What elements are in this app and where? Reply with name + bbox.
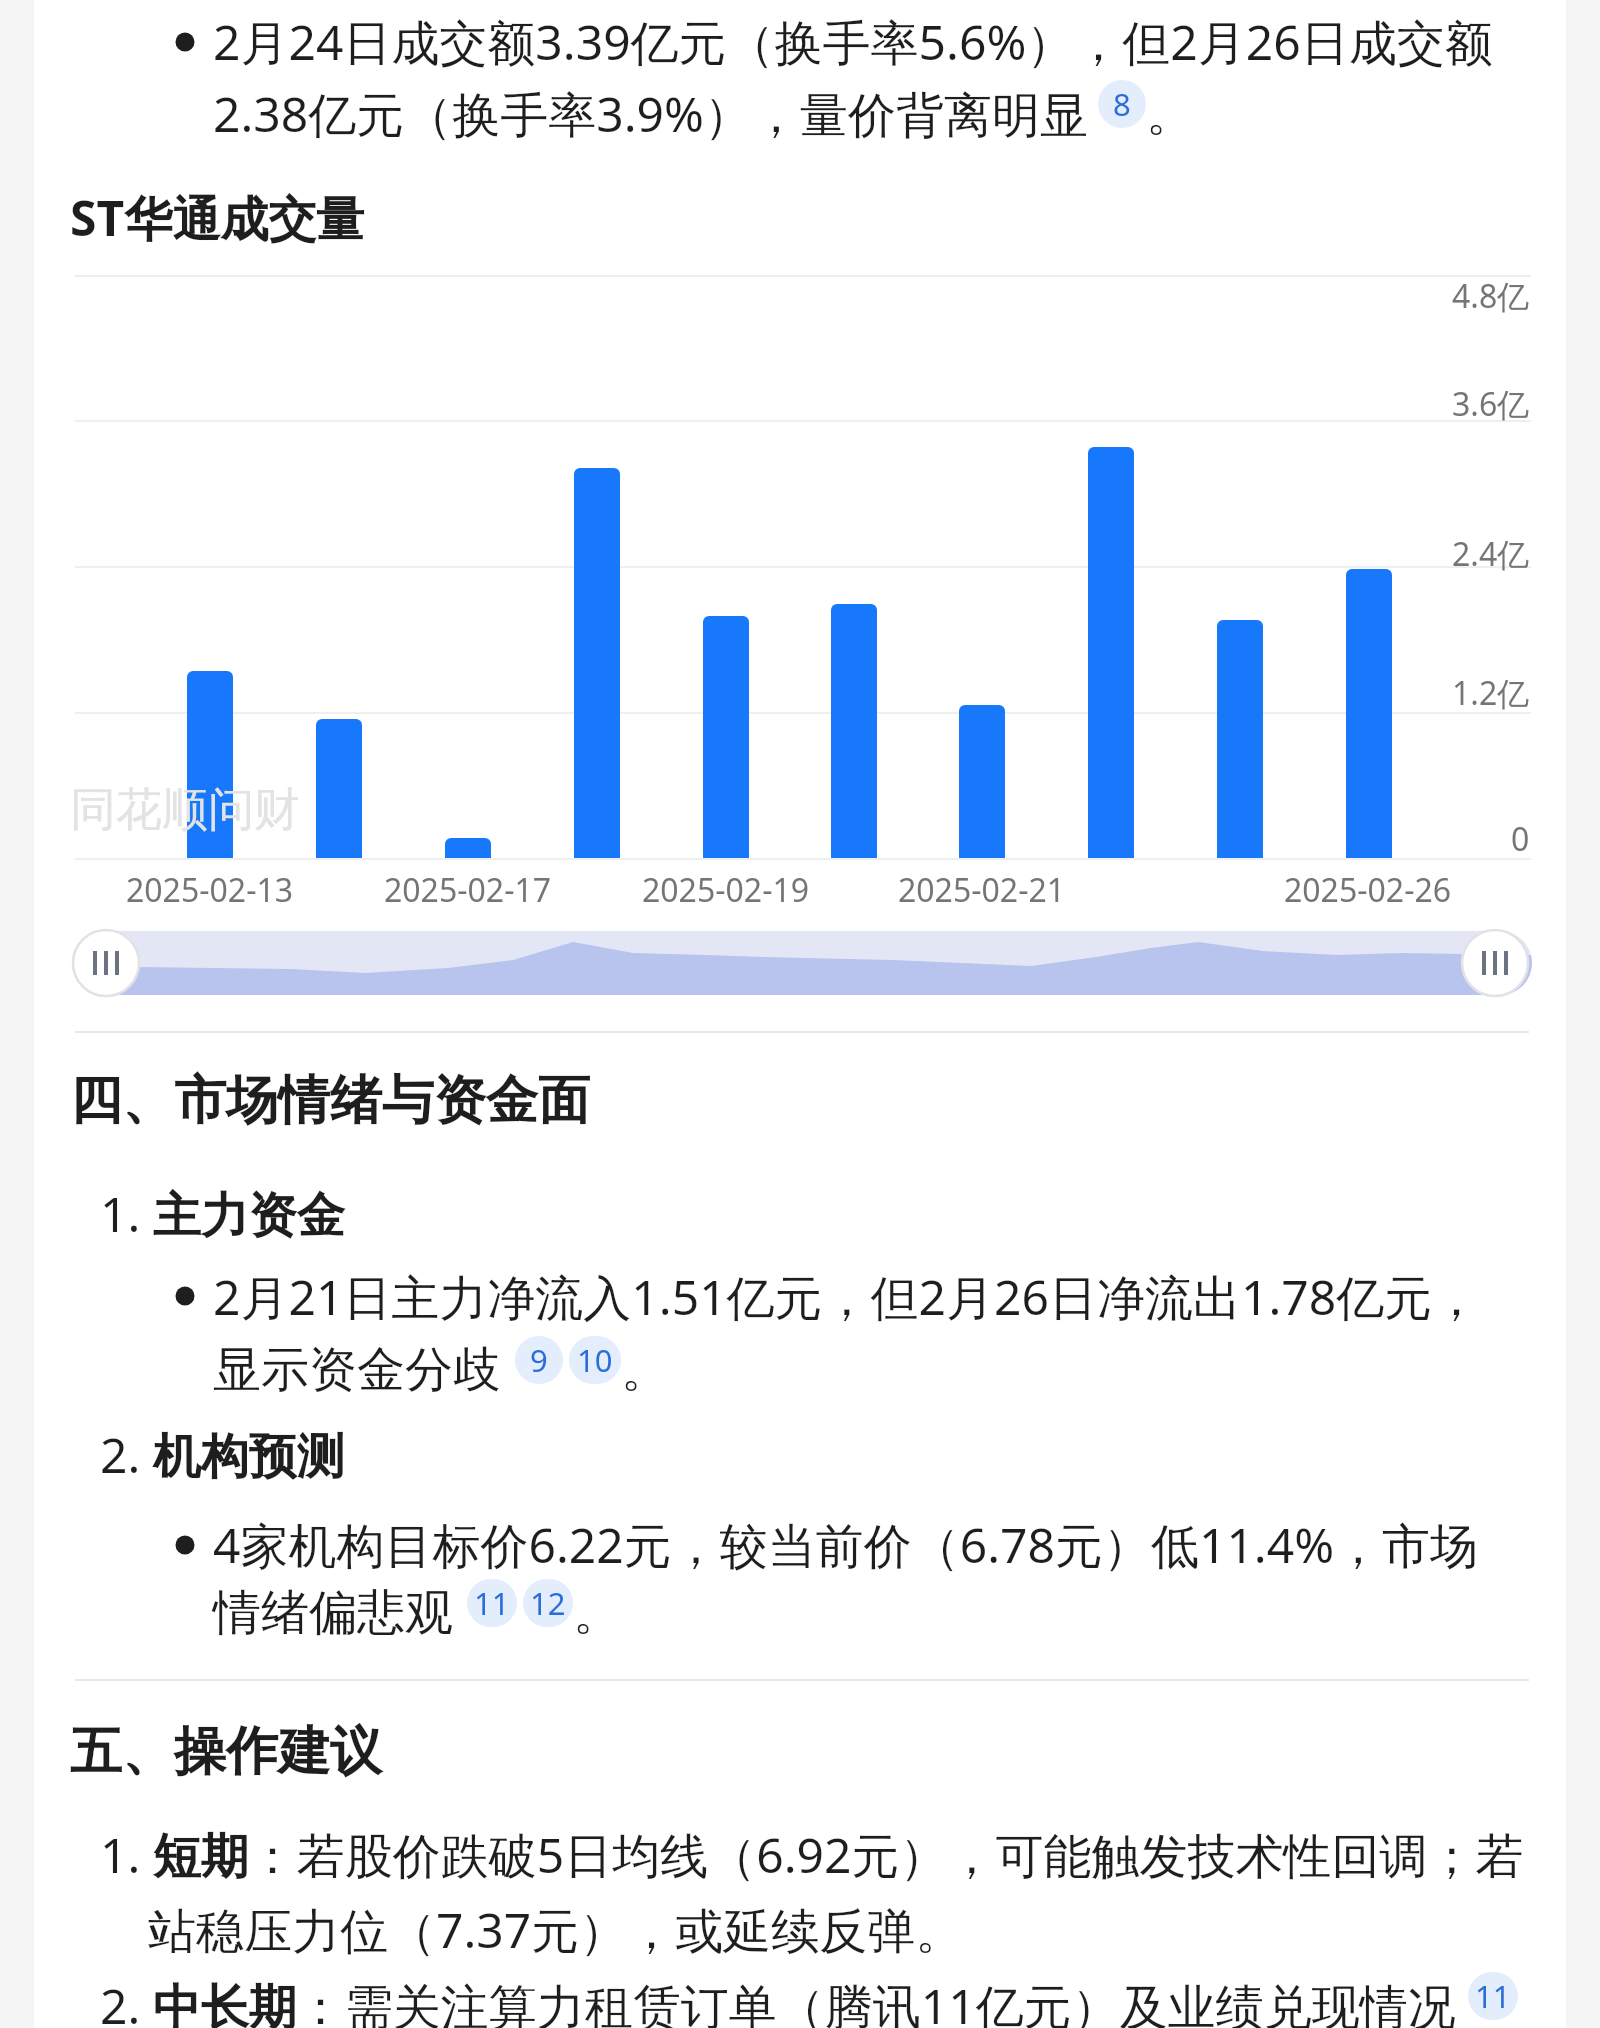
staticText: 五、操作建议 — [70, 1719, 382, 1785]
staticText: 2月24日成交额3.39亿元（换手率5.6%），但2月26日成交额 — [213, 9, 1493, 75]
staticText: 2.4亿 — [1452, 532, 1530, 576]
button[interactable]: 11 — [1468, 1972, 1518, 2020]
staticText: 1. 短期：若股价跌破5日均线（6.92元），可能触发技术性回调；若 — [100, 1822, 1524, 1888]
button[interactable]: 8 — [1098, 80, 1146, 128]
button[interactable]: 10 — [569, 1336, 621, 1384]
staticText: 2月21日主力净流入1.51亿元，但2月26日净流出1.78亿元， — [213, 1264, 1481, 1330]
staticText: 。 — [1146, 84, 1194, 144]
staticText: 10 — [577, 1339, 613, 1381]
staticText: 1. 主力资金 — [100, 1181, 345, 1247]
staticText: 显示资金分歧 — [213, 1340, 501, 1400]
staticText: 2.38亿元（换手率3.9%），量价背离明显 — [213, 81, 1088, 147]
staticText: 3.6亿 — [1452, 382, 1530, 426]
button[interactable]: 9 — [515, 1336, 563, 1384]
staticText: 2025-02-21 — [898, 868, 1066, 912]
staticText: 同花顺问财 — [70, 781, 300, 839]
staticText: 8 — [1113, 83, 1131, 125]
staticText: 12 — [530, 1582, 566, 1624]
staticText: 。 — [573, 1583, 621, 1643]
staticText: 2. 中长期：需关注算力租赁订单（腾讯11亿元）及业绩兑现情况 — [100, 1973, 1456, 2028]
staticText: 4.8亿 — [1452, 274, 1530, 318]
staticText: 2. 机构预测 — [100, 1422, 345, 1488]
staticText: 2025-02-17 — [384, 868, 552, 912]
staticText: 2025-02-13 — [126, 868, 294, 912]
staticText: 1.2亿 — [1452, 671, 1530, 715]
button[interactable]: 11 — [467, 1579, 517, 1627]
staticText: 2025-02-19 — [642, 868, 810, 912]
staticText: 11 — [1475, 1975, 1511, 2017]
staticText: 0 — [1511, 817, 1530, 861]
staticText: ST华通成交量 — [70, 185, 365, 251]
staticText: 情绪偏悲观 — [213, 1583, 453, 1643]
button[interactable]: 12 — [523, 1579, 573, 1627]
staticText: 2025-02-26 — [1284, 868, 1452, 912]
staticText: 。 — [621, 1340, 669, 1400]
staticText: 9 — [530, 1339, 548, 1381]
staticText: 11 — [474, 1582, 510, 1624]
staticText: 4家机构目标价6.22元，较当前价（6.78元）低11.4%，市场 — [213, 1512, 1479, 1578]
staticText: 四、市场情绪与资金面 — [70, 1068, 590, 1134]
staticText: 站稳压力位（7.37元），或延续反弹。 — [148, 1897, 964, 1963]
